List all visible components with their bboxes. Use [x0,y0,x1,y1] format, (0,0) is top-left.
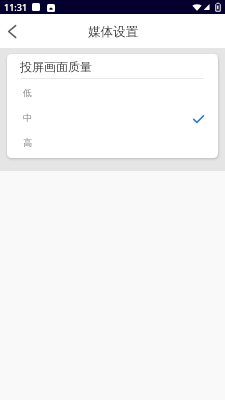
button[interactable]: 中 [7,105,218,130]
staticText: 高 [23,137,32,148]
staticText: 11:31 [4,1,28,13]
staticText: 媒体设置 [88,24,138,40]
button[interactable]: 低 [7,80,218,105]
staticText: 中 [23,112,32,123]
staticText: 投屏画面质量 [20,59,92,74]
staticText: 低 [23,87,32,98]
button[interactable]: Dismiss dialog [0,48,225,171]
button[interactable]: 高 [7,130,218,155]
button[interactable]: Back [0,14,34,48]
